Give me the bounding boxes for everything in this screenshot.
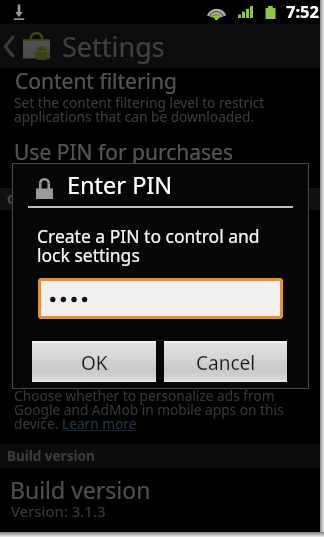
staticText: OK [81, 350, 108, 376]
staticText: Personalize ads [14, 241, 115, 260]
staticText: Google AdMob Ads [14, 216, 204, 245]
staticText: Build version [7, 447, 95, 465]
staticText: Create a PIN to control and lock setting… [37, 224, 260, 267]
staticText: Use PIN for purchases [14, 138, 233, 167]
button[interactable]: Cancel [164, 341, 287, 382]
staticText: Content filtering [15, 67, 177, 96]
staticText: Set or change the PIN required for purch… [14, 164, 305, 183]
staticText: Build version [10, 474, 151, 505]
other: Download [13, 4, 25, 20]
staticText: Other [7, 190, 45, 208]
button[interactable]: PIN entry [38, 278, 283, 319]
staticText: Settings [62, 28, 165, 65]
staticText: Enter PIN [67, 169, 173, 201]
button[interactable]: OK [32, 341, 156, 382]
button[interactable]: Learn more [62, 414, 137, 433]
other: Back [4, 36, 15, 57]
button[interactable]: Back [0, 24, 320, 68]
staticText: Set the content filtering level to restr… [14, 93, 265, 126]
staticText: 7:52 [286, 0, 319, 22]
staticText: Choose whether to personalize ads from G… [14, 386, 284, 433]
staticText: Cancel [196, 350, 256, 376]
staticText: Version: 3.1.3 [11, 501, 106, 521]
